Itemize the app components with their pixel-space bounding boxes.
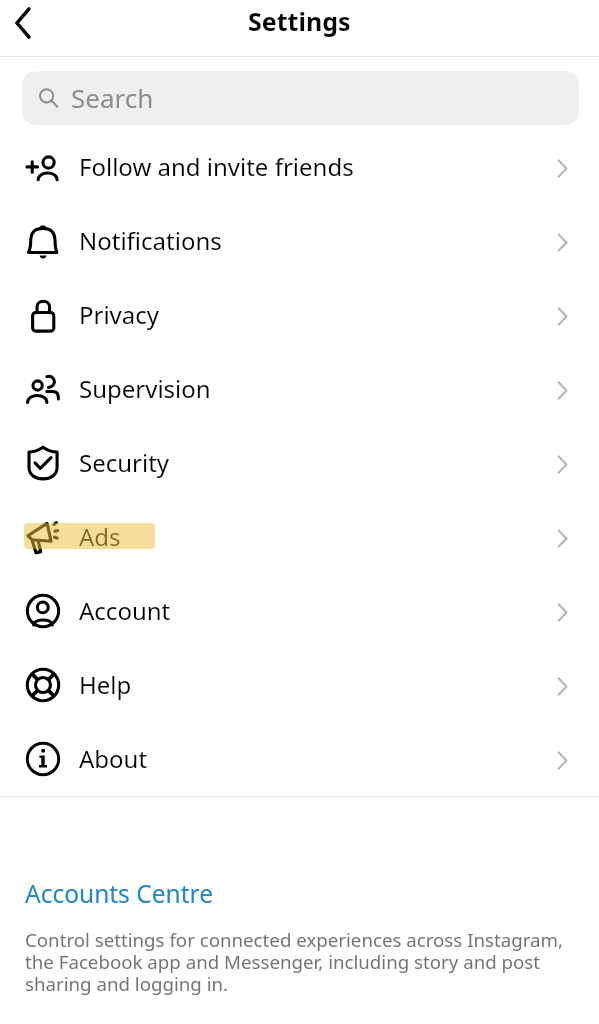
staticText: Supervision: [79, 372, 211, 405]
button[interactable]: Back: [0, 0, 46, 46]
button[interactable]: Notifications: [0, 204, 599, 278]
button[interactable]: Help: [0, 648, 599, 722]
staticText: Search: [71, 80, 154, 115]
staticText: Security: [79, 446, 170, 479]
button[interactable]: Follow and invite friends: [0, 130, 599, 204]
button[interactable]: Search: [22, 71, 579, 125]
button[interactable]: Account: [0, 574, 599, 648]
button[interactable]: Ads: [0, 500, 599, 574]
button[interactable]: About: [0, 722, 599, 796]
staticText: Ads: [79, 520, 121, 553]
staticText: About: [79, 742, 148, 775]
button[interactable]: Privacy: [0, 278, 599, 352]
staticText: Control settings for connected experienc…: [25, 927, 591, 996]
staticText: Help: [79, 668, 132, 701]
staticText: Privacy: [79, 298, 160, 331]
staticText: Notifications: [79, 224, 222, 257]
staticText: Accounts Centre: [25, 877, 213, 910]
button[interactable]: Supervision: [0, 352, 599, 426]
staticText: Settings: [248, 4, 351, 38]
staticText: Follow and invite friends: [79, 150, 354, 183]
button[interactable]: Security: [0, 426, 599, 500]
staticText: Account: [79, 594, 171, 627]
